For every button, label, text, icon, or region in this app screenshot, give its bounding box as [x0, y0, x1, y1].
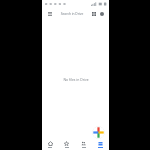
- staticText: No files in Drive: [63, 77, 89, 82]
- button[interactable]: Home: [42, 139, 58, 150]
- button[interactable]: Open navigation menu: [44, 8, 107, 19]
- button[interactable]: Files: [92, 139, 109, 150]
- button[interactable]: Switch layout: [90, 10, 97, 17]
- staticText: Search in Drive: [54, 12, 90, 16]
- button[interactable]: Create new: [92, 126, 105, 139]
- button[interactable]: Open navigation menu: [46, 10, 53, 17]
- button[interactable]: Starred: [58, 139, 75, 150]
- button[interactable]: Shared: [75, 139, 92, 150]
- button[interactable]: Account: [98, 10, 105, 17]
